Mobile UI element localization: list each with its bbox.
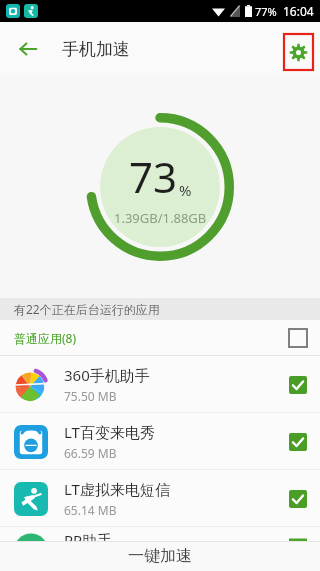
button[interactable]: LT虚拟来电短信 [0,470,320,527]
button[interactable]: 普通应用(8) [0,320,320,356]
button[interactable]: LT百变来电秀 [0,413,320,470]
staticText: 1.39GB/1.88GB [114,209,207,227]
staticText: 有22个正在后台运行的应用 [14,301,160,317]
staticText: 360手机助手 [64,365,150,385]
staticText: 手机加速 [62,39,130,60]
staticText: 73 [129,148,178,205]
button[interactable]: 360手机助手 [0,356,320,413]
button[interactable]: Back [8,29,48,69]
staticText: 普通应用(8) [14,330,77,346]
staticText: % [179,180,192,200]
staticText: 77% [255,4,277,19]
staticText: 65.14 MB [64,502,117,518]
button[interactable]: PP助手 [0,527,320,541]
staticText: 66.59 MB [64,445,117,461]
staticText: PP助手 [64,530,113,541]
staticText: LT百变来电秀 [64,422,155,442]
staticText: 一键加速 [128,546,192,566]
button[interactable]: 一键加速 [0,541,320,571]
button[interactable]: Settings [284,34,313,70]
staticText: LT虚拟来电短信 [64,479,170,499]
staticText: 16:04 [283,3,314,19]
staticText: 75.50 MB [64,388,117,404]
